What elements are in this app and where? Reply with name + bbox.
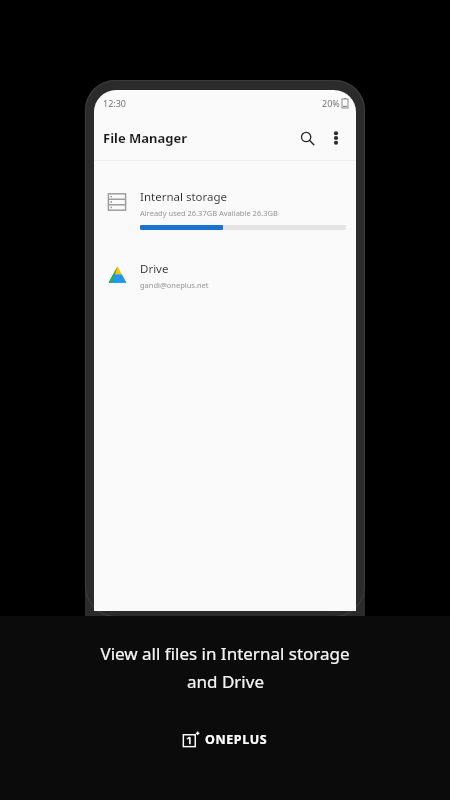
staticText: ONEPLUS bbox=[205, 731, 268, 748]
staticText: Drive bbox=[140, 261, 169, 277]
button[interactable]: More options bbox=[322, 124, 350, 152]
staticText: Internal storage bbox=[140, 189, 228, 205]
staticText: Already used 26.37GB Avaliable 26.3GB bbox=[140, 208, 278, 218]
staticText: 20% bbox=[322, 97, 340, 109]
staticText: View all files in Internal storage bbox=[100, 642, 350, 665]
staticText: and Drive bbox=[187, 670, 264, 693]
button[interactable]: Internal storage bbox=[94, 187, 356, 232]
staticText: 12:30 bbox=[103, 97, 127, 109]
staticText: File Manager bbox=[103, 129, 188, 147]
button[interactable]: Search bbox=[292, 123, 322, 153]
staticText: gandi@oneplus.net bbox=[140, 280, 209, 290]
button[interactable]: Drive bbox=[94, 259, 356, 292]
